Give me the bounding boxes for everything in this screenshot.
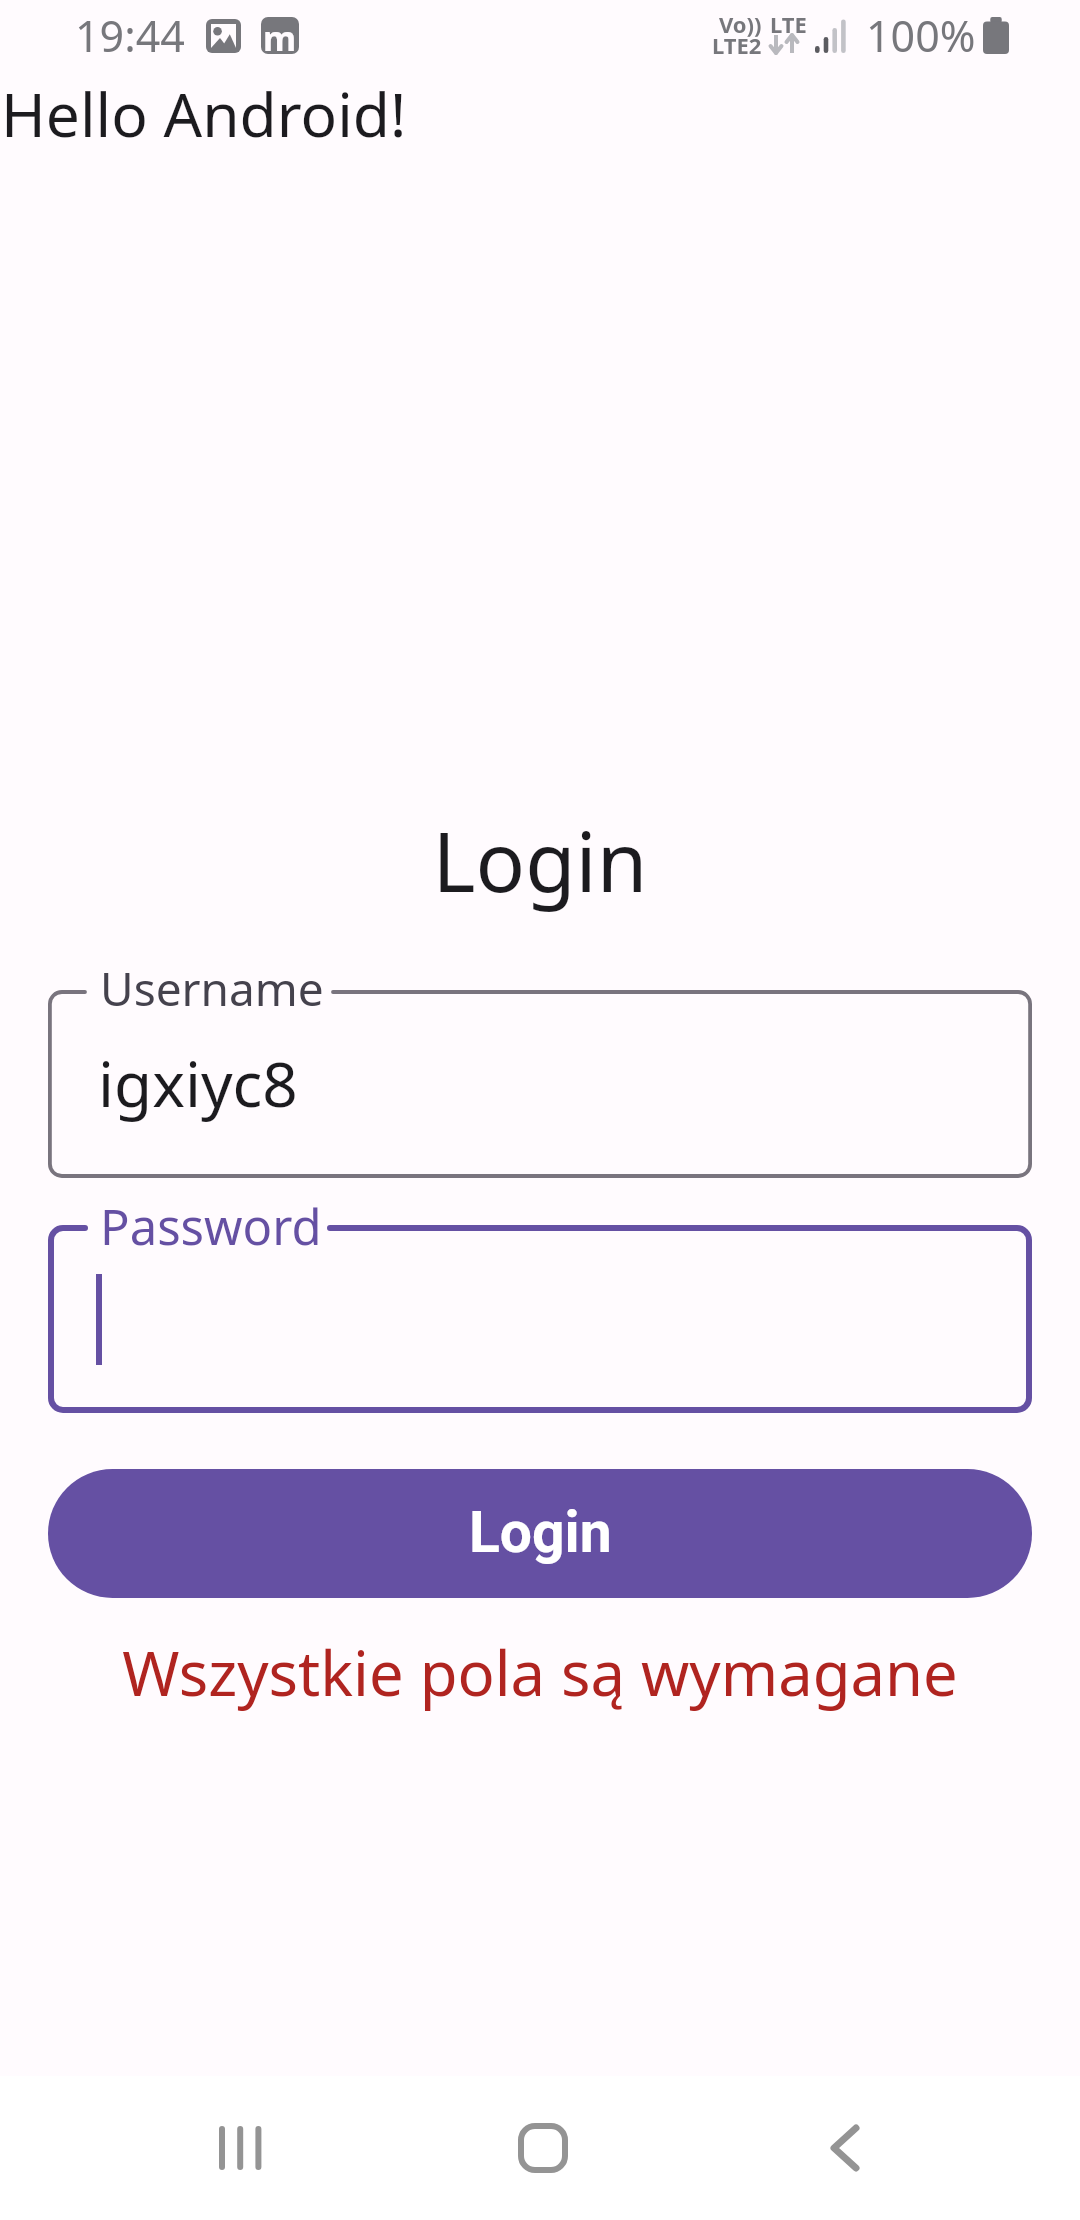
button[interactable]: Password [48,1198,1032,1440]
staticText: Login [0,804,1080,916]
button[interactable]: Home [483,2076,603,2220]
staticText: LTE [770,9,807,39]
button[interactable]: Login [48,1469,1032,1598]
button[interactable]: Username [48,962,1032,1206]
staticText: Wszystkie pola są wymagane [0,1630,1080,1714]
staticText: igxiyc8 [98,1041,298,1125]
staticText: Hello Android! [1,72,407,154]
staticText: 19:44 [75,6,185,65]
staticText: m [263,17,297,52]
staticText: Vo)) [719,9,762,39]
staticText: Password [100,1193,322,1260]
staticText: Login [469,1499,612,1566]
staticText: LTE2 [712,30,762,60]
staticText: 100% [866,6,976,65]
staticText: Username [100,957,324,1020]
button[interactable]: Recent apps [180,2076,300,2220]
button[interactable]: Back [785,2076,905,2220]
